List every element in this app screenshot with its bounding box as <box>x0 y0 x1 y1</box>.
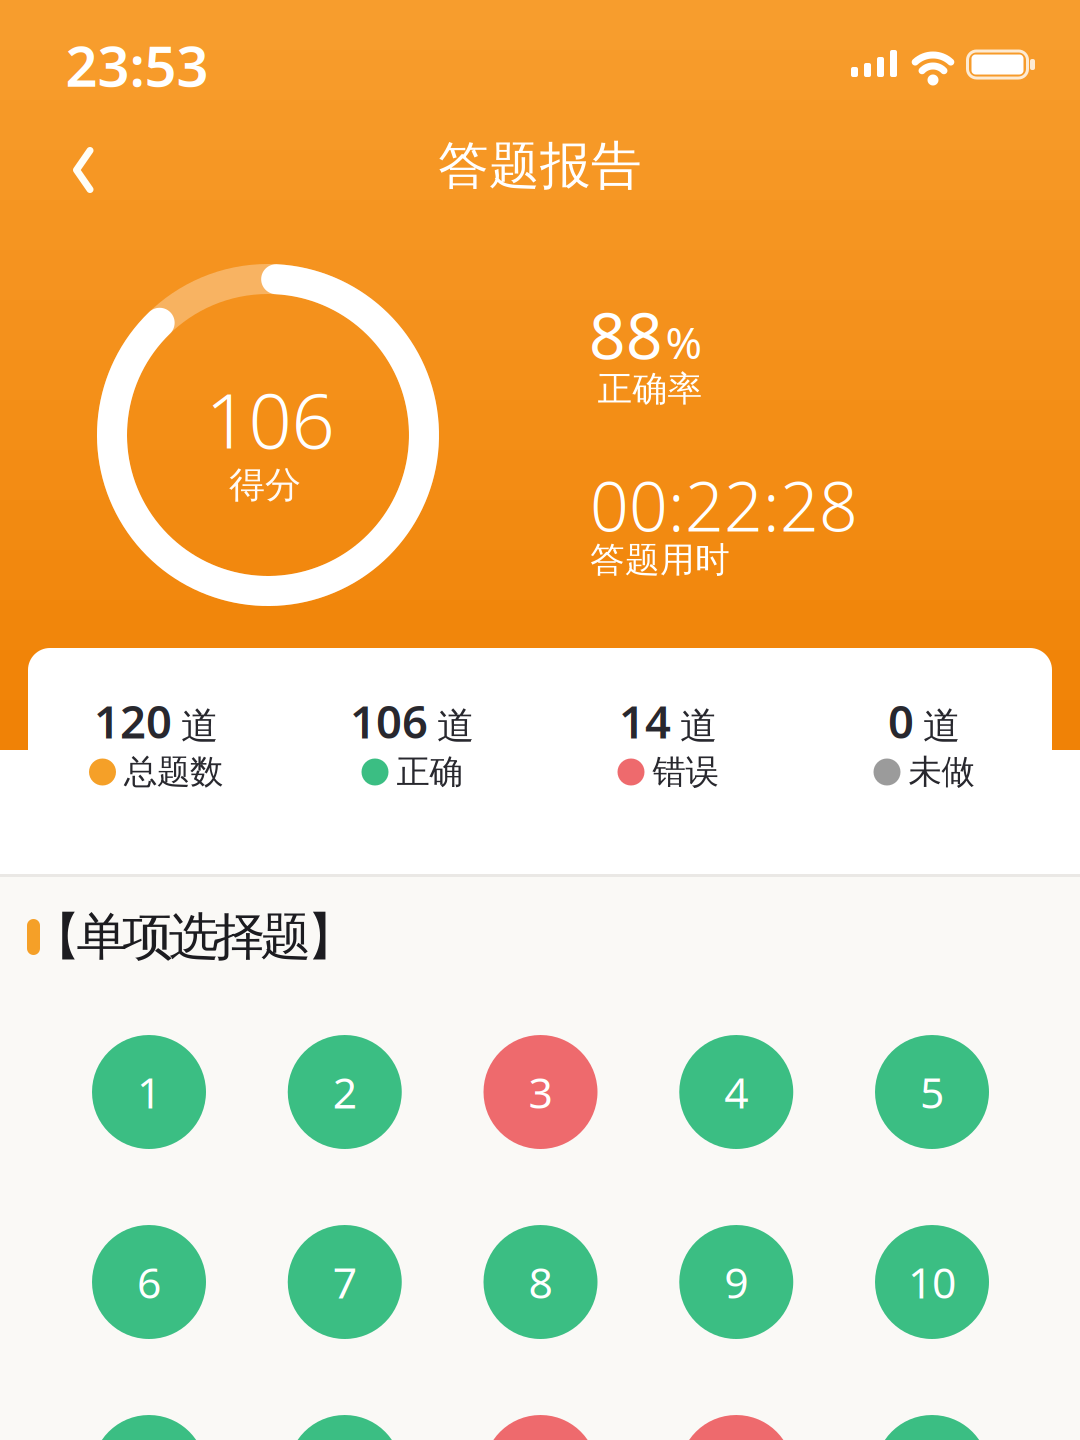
button[interactable]: 第9题 <box>679 1225 793 1339</box>
staticText: 正确率 <box>597 368 702 410</box>
staticText: 未做 <box>908 751 974 792</box>
button[interactable]: 第13题 <box>483 1415 597 1440</box>
staticText: 7 <box>333 1254 357 1310</box>
staticText: 106 <box>205 368 334 469</box>
staticText: 5 <box>920 1064 944 1120</box>
staticText: 120 <box>94 691 172 751</box>
staticText: 道 <box>923 703 960 749</box>
staticText: 正确 <box>396 751 462 792</box>
staticText: 106 <box>350 691 428 751</box>
button[interactable]: 第11题 <box>92 1415 206 1440</box>
staticText: 6 <box>137 1254 161 1310</box>
staticText: 0 <box>888 691 914 751</box>
button[interactable]: 第8题 <box>483 1225 597 1339</box>
staticText: 总题数 <box>124 751 223 792</box>
button[interactable]: 第14题 <box>679 1415 793 1440</box>
staticText: 4 <box>724 1064 748 1120</box>
button[interactable]: 第5题 <box>875 1035 989 1149</box>
staticText: 答题用时 <box>590 539 730 581</box>
staticText: % <box>665 313 702 371</box>
staticText: 错误 <box>652 751 718 792</box>
staticText: 14 <box>619 691 671 751</box>
staticText: 9 <box>724 1254 748 1310</box>
button[interactable]: 第12题 <box>288 1415 402 1440</box>
staticText: 3 <box>528 1064 552 1120</box>
staticText: 道 <box>181 703 218 749</box>
staticText: 【单项选择题】 <box>30 906 357 968</box>
staticText: 得分 <box>229 463 301 507</box>
button[interactable]: 第4题 <box>679 1035 793 1149</box>
staticText: 答题报告 <box>438 135 642 197</box>
button[interactable]: 第2题 <box>288 1035 402 1149</box>
button[interactable]: 第3题 <box>483 1035 597 1149</box>
staticText: 8 <box>528 1254 552 1310</box>
staticText: 道 <box>680 703 717 749</box>
staticText: 1 <box>137 1064 161 1120</box>
button[interactable]: 第10题 <box>875 1225 989 1339</box>
staticText: 2 <box>333 1064 357 1120</box>
staticText: 10 <box>908 1254 956 1310</box>
button[interactable]: 第15题 <box>875 1415 989 1440</box>
button[interactable]: 第1题 <box>92 1035 206 1149</box>
staticText: 88 <box>589 292 663 377</box>
staticText: 00:22:28 <box>590 460 858 550</box>
button[interactable]: Back <box>54 130 112 209</box>
button[interactable]: 第7题 <box>288 1225 402 1339</box>
staticText: 道 <box>437 703 474 749</box>
button[interactable]: 第6题 <box>92 1225 206 1339</box>
staticText: 23:53 <box>65 28 208 102</box>
